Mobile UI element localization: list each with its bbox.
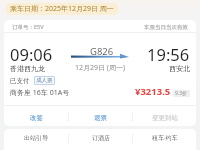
staticText: 改签 <box>30 114 43 122</box>
staticText: 香港西九龙 <box>10 64 45 73</box>
button[interactable]: 乘车日期：2025年12月29日 周一 <box>6 3 118 15</box>
button[interactable]: 退票 <box>69 109 132 126</box>
staticText: 19:56 <box>147 43 190 65</box>
button[interactable]: 变更到站 <box>133 109 196 126</box>
button[interactable]: 租车·约车 <box>133 129 196 146</box>
staticText: 商务座 16车 01A号 <box>10 88 70 98</box>
button[interactable]: 改签 <box>4 109 68 126</box>
staticText: 出站引导 <box>24 134 48 142</box>
button[interactable]: 出站引导 <box>4 129 68 146</box>
staticText: 退票 <box>94 114 107 122</box>
staticText: 变更到站 <box>152 114 178 122</box>
staticText: 乘车日期：2025年12月29日 周一 <box>10 4 114 14</box>
staticText: 订酒店 <box>92 134 110 142</box>
staticText: 09:06 <box>10 43 53 65</box>
staticText: 成人票 <box>36 77 53 84</box>
staticText: ¥3213.5 <box>135 85 171 98</box>
staticText: 车票当日当次有效 <box>144 24 188 31</box>
staticText: 西安北 <box>169 64 190 73</box>
staticText: G826 <box>90 45 114 58</box>
button[interactable]: 订酒店 <box>69 129 132 146</box>
staticText: 租车·约车 <box>152 134 178 142</box>
staticText: 12月29日 (周一) <box>75 63 126 73</box>
staticText: 已支付 <box>10 77 30 85</box>
staticText: 9.3折 <box>175 90 188 97</box>
staticText: 订单号：E5V <box>12 23 44 31</box>
